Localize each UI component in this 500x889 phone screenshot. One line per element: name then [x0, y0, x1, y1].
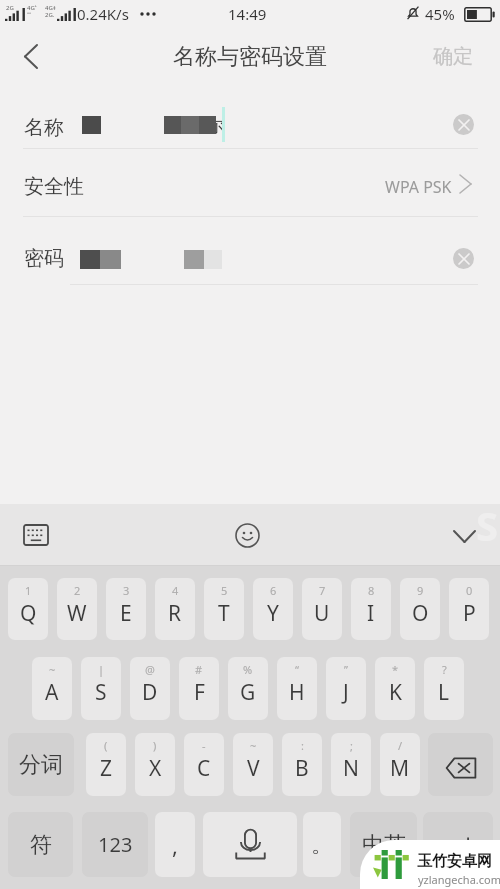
staticText: H: [289, 678, 305, 707]
button[interactable]: ,: [155, 812, 195, 877]
staticText: ): [153, 738, 157, 753]
staticText: 尔: [207, 115, 225, 138]
button[interactable]: #: [179, 657, 219, 720]
staticText: 4G‡: [45, 4, 56, 12]
button[interactable]: Keyboard layout: [14, 513, 58, 557]
button[interactable]: 密码: [0, 217, 500, 284]
button[interactable]: 确定: [413, 28, 500, 85]
button[interactable]: 123: [82, 812, 148, 877]
staticText: 2G.: [45, 11, 55, 19]
button[interactable]: 6: [253, 578, 293, 640]
button[interactable]: Emoji: [225, 513, 269, 557]
button[interactable]: 8: [351, 578, 391, 640]
staticText: 45%: [425, 4, 455, 24]
button[interactable]: 1: [8, 578, 48, 640]
staticText: J: [343, 678, 349, 707]
button[interactable]: Hide keyboard: [442, 513, 486, 557]
staticText: V: [247, 754, 260, 783]
button[interactable]: 安全性: [0, 149, 500, 216]
button[interactable]: 3: [106, 578, 146, 640]
staticText: E: [120, 599, 132, 628]
button[interactable]: Backspace: [428, 733, 493, 796]
staticText: 密码: [24, 246, 64, 271]
staticText: 6: [270, 583, 277, 598]
staticText: P: [463, 599, 476, 628]
staticText: 4G⁺: [27, 4, 37, 12]
button[interactable]: ”: [326, 657, 366, 720]
button[interactable]: 。: [303, 812, 341, 877]
button[interactable]: 名称: [0, 85, 500, 148]
staticText: #: [195, 662, 203, 677]
button[interactable]: 9: [400, 578, 440, 640]
staticText: B: [295, 754, 309, 783]
staticText: D: [142, 678, 158, 707]
staticText: M: [390, 754, 410, 783]
staticText: 5: [221, 583, 228, 598]
button[interactable]: Voice input: [203, 812, 297, 877]
staticText: ~: [250, 738, 257, 753]
button[interactable]: 2: [57, 578, 97, 640]
button[interactable]: ~: [32, 657, 72, 720]
staticText: 0: [466, 583, 473, 598]
staticText: 名称: [24, 115, 64, 140]
staticText: ;: [350, 738, 353, 753]
staticText: WPA PSK: [385, 176, 452, 198]
staticText: 3: [123, 583, 130, 598]
button[interactable]: 5: [204, 578, 244, 640]
button[interactable]: ~: [233, 733, 273, 796]
button[interactable]: -: [184, 733, 224, 796]
staticText: (: [104, 738, 108, 753]
button[interactable]: (: [86, 733, 126, 796]
button[interactable]: Clear: [453, 114, 474, 135]
staticText: ~: [49, 662, 56, 677]
staticText: :: [301, 738, 304, 753]
staticText: “: [295, 662, 299, 677]
button[interactable]: ?: [424, 657, 464, 720]
button[interactable]: 分词: [8, 733, 74, 796]
staticText: 1: [25, 583, 32, 598]
button[interactable]: Back: [0, 28, 64, 85]
button[interactable]: /: [380, 733, 420, 796]
button[interactable]: 7: [302, 578, 342, 640]
button[interactable]: %: [228, 657, 268, 720]
staticText: |: [98, 662, 105, 677]
staticText: Q: [20, 599, 37, 628]
staticText: 123: [98, 831, 133, 858]
button[interactable]: Enter: [423, 812, 493, 877]
button[interactable]: :: [282, 733, 322, 796]
staticText: W: [67, 599, 87, 628]
staticText: ⁺⁺: [27, 11, 32, 19]
staticText: 0.24K/s: [77, 4, 129, 24]
button[interactable]: 中英: [350, 812, 417, 877]
button[interactable]: 符: [8, 812, 73, 877]
staticText: O: [412, 599, 429, 628]
staticText: @: [145, 662, 155, 677]
button[interactable]: ;: [331, 733, 371, 796]
staticText: 确定: [433, 44, 473, 69]
staticText: S: [476, 498, 499, 552]
button[interactable]: ): [135, 733, 175, 796]
staticText: T: [218, 599, 230, 628]
staticText: F: [194, 678, 205, 707]
button[interactable]: 4: [155, 578, 195, 640]
staticText: 2G: [6, 4, 14, 12]
staticText: A: [45, 678, 59, 707]
button[interactable]: “: [277, 657, 317, 720]
staticText: 分词: [19, 751, 63, 779]
button[interactable]: Clear: [453, 248, 474, 269]
staticText: 名称与密码设置: [173, 43, 327, 71]
button[interactable]: *: [375, 657, 415, 720]
staticText: R: [168, 599, 182, 628]
staticText: 符: [30, 831, 52, 859]
staticText: 。: [311, 831, 333, 859]
button[interactable]: |: [81, 657, 121, 720]
button[interactable]: @: [130, 657, 170, 720]
staticText: 玉竹安卓网: [417, 852, 492, 871]
staticText: 安全性: [24, 174, 84, 199]
staticText: 7: [319, 583, 326, 598]
button[interactable]: 0: [449, 578, 489, 640]
staticText: K: [389, 678, 402, 707]
staticText: 14:49: [228, 4, 267, 24]
staticText: ”: [344, 662, 348, 677]
staticText: N: [343, 754, 359, 783]
